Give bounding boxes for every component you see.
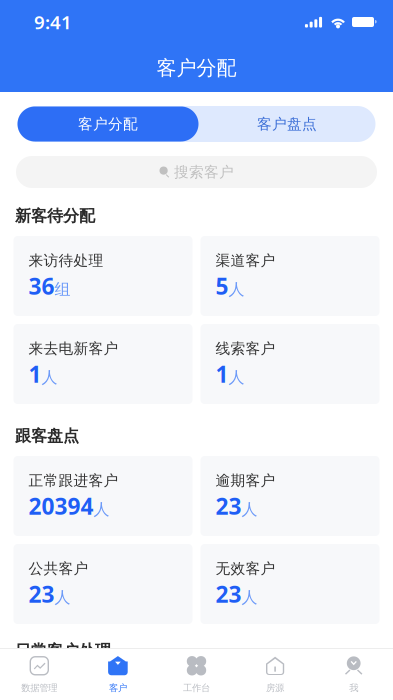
button[interactable]: 来访待处理 [13,236,192,316]
button[interactable]: 房源 [236,649,314,700]
button[interactable]: 工作台 [157,649,236,700]
staticText: 我 [349,682,358,694]
staticText: 20394 [28,491,93,521]
button[interactable]: 正常跟进客户 [13,456,192,536]
staticText: 客户 [109,682,127,694]
staticText: 客户盘点 [257,115,317,133]
staticText: 房源 [266,682,284,694]
staticText: 来去电新客户 [28,339,118,357]
staticText: 人 [54,588,70,607]
staticText: 日常客户处理 [15,641,111,661]
button[interactable]: 数据管理 [0,649,79,700]
button[interactable]: 无效客户 [200,544,379,624]
button[interactable]: 线索客户 [200,324,379,404]
staticText: 人 [241,500,257,519]
staticText: 1 [215,359,228,389]
button[interactable]: 逾期客户 [200,456,379,536]
staticText: 数据管理 [21,682,57,694]
staticText: 客户分配 [78,115,138,133]
button[interactable]: 客户 [79,649,157,700]
staticText: 搜索客户 [174,163,234,181]
staticText: 组 [54,280,70,299]
staticText: 23 [28,579,54,609]
button[interactable]: 来去电新客户 [13,324,192,404]
button[interactable]: 搜索客户 [16,156,377,188]
button[interactable]: 渠道客户 [200,236,379,316]
staticText: 工作台 [183,682,210,694]
staticText: 36 [28,271,54,301]
staticText: 9:41 [34,10,72,34]
staticText: 无效客户 [215,559,275,577]
staticText: 5 [215,271,228,301]
staticText: 渠道客户 [215,251,275,269]
staticText: 人 [228,280,244,299]
staticText: 新客待分配 [15,206,95,226]
staticText: 23 [215,491,241,521]
staticText: 1 [28,359,41,389]
staticText: 线索客户 [215,339,275,357]
button[interactable]: 公共客户 [13,544,192,624]
button[interactable]: 客户盘点 [198,106,375,141]
staticText: 逾期客户 [215,471,275,489]
staticText: 人 [241,588,257,607]
staticText: 客户分配 [156,56,236,80]
button[interactable]: 客户分配 [17,106,198,141]
staticText: 人 [228,368,244,387]
staticText: 跟客盘点 [15,426,79,446]
button[interactable]: 我 [314,649,393,700]
staticText: 人 [41,368,57,387]
staticText: 正常跟进客户 [28,471,118,489]
staticText: 来访待处理 [28,251,103,269]
staticText: 公共客户 [28,559,88,577]
staticText: 23 [215,579,241,609]
staticText: 人 [93,500,109,519]
